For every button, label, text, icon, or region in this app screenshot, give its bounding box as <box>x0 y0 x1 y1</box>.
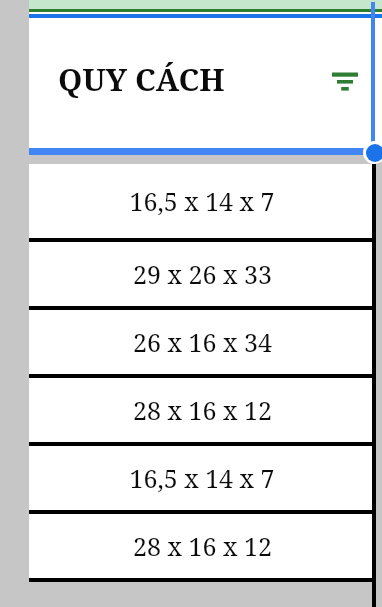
button[interactable]: 28 x 16 x 12 <box>29 514 375 578</box>
button[interactable]: Resize handle <box>363 141 382 164</box>
staticText: 16,5 x 14 x 7 <box>129 184 275 218</box>
button[interactable]: 29 x 26 x 33 <box>29 242 375 306</box>
staticText: 29 x 26 x 33 <box>133 257 272 291</box>
staticText: 26 x 16 x 34 <box>133 325 272 359</box>
staticText: QUY CÁCH <box>58 58 225 100</box>
button[interactable]: Filter <box>328 62 362 96</box>
button[interactable]: 16,5 x 14 x 7 <box>29 164 375 238</box>
button[interactable]: QUY CÁCH <box>29 18 382 148</box>
staticText: 16,5 x 14 x 7 <box>129 461 275 495</box>
button[interactable]: 28 x 16 x 12 <box>29 378 375 442</box>
button[interactable]: 26 x 16 x 34 <box>29 310 375 374</box>
staticText: 28 x 16 x 12 <box>133 529 272 563</box>
staticText: 28 x 16 x 12 <box>133 393 272 427</box>
button[interactable]: 16,5 x 14 x 7 <box>29 446 375 510</box>
